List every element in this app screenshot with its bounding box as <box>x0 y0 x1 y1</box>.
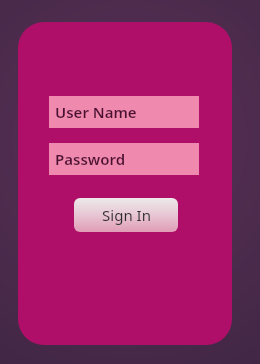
staticText: Sign In <box>102 205 151 225</box>
staticText: Password <box>55 149 126 169</box>
button[interactable]: Password <box>49 143 199 175</box>
button[interactable]: Sign In <box>74 198 178 232</box>
staticText: User Name <box>55 102 137 122</box>
button[interactable]: User Name <box>49 96 199 128</box>
